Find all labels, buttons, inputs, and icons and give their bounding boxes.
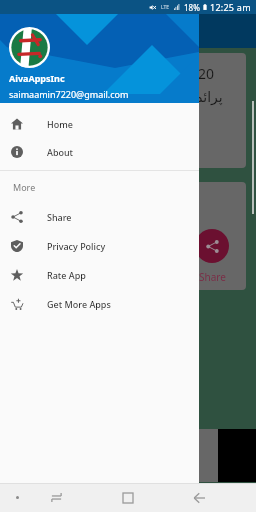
staticText: Home bbox=[47, 118, 73, 130]
staticText: 12:25 am bbox=[210, 1, 251, 13]
button[interactable]: Privacy Policy bbox=[0, 231, 199, 260]
button[interactable]: Share bbox=[195, 229, 229, 263]
staticText: AivaAppsInc bbox=[9, 72, 65, 84]
button[interactable]: Assistant bbox=[0, 483, 34, 512]
button[interactable]: Recents bbox=[34, 483, 78, 512]
staticText: Share bbox=[199, 270, 226, 284]
button[interactable]: 2020 bbox=[174, 53, 246, 168]
staticText: About bbox=[47, 146, 74, 158]
staticText: Privacy Policy bbox=[47, 240, 106, 252]
staticText: Get More Apps bbox=[47, 298, 111, 310]
staticText: 18% bbox=[184, 2, 200, 13]
button[interactable]: Home bbox=[0, 110, 199, 138]
button[interactable]: Rate App bbox=[0, 260, 199, 289]
button[interactable]: Get More Apps bbox=[0, 289, 199, 318]
button[interactable]: Home bbox=[106, 483, 150, 512]
staticText: Rate App bbox=[47, 269, 86, 281]
staticText: LTE bbox=[161, 4, 170, 11]
button[interactable]: Share bbox=[174, 182, 246, 290]
staticText: پرائمہ bbox=[187, 89, 223, 105]
button[interactable]: Back bbox=[177, 483, 221, 512]
button[interactable]: Share bbox=[0, 202, 199, 231]
button[interactable]: About bbox=[0, 138, 199, 166]
staticText: saimaamin7220@gmail.com bbox=[9, 88, 129, 100]
staticText: Share bbox=[47, 211, 72, 223]
staticText: More bbox=[13, 181, 36, 193]
staticText: 2020 bbox=[182, 64, 215, 83]
